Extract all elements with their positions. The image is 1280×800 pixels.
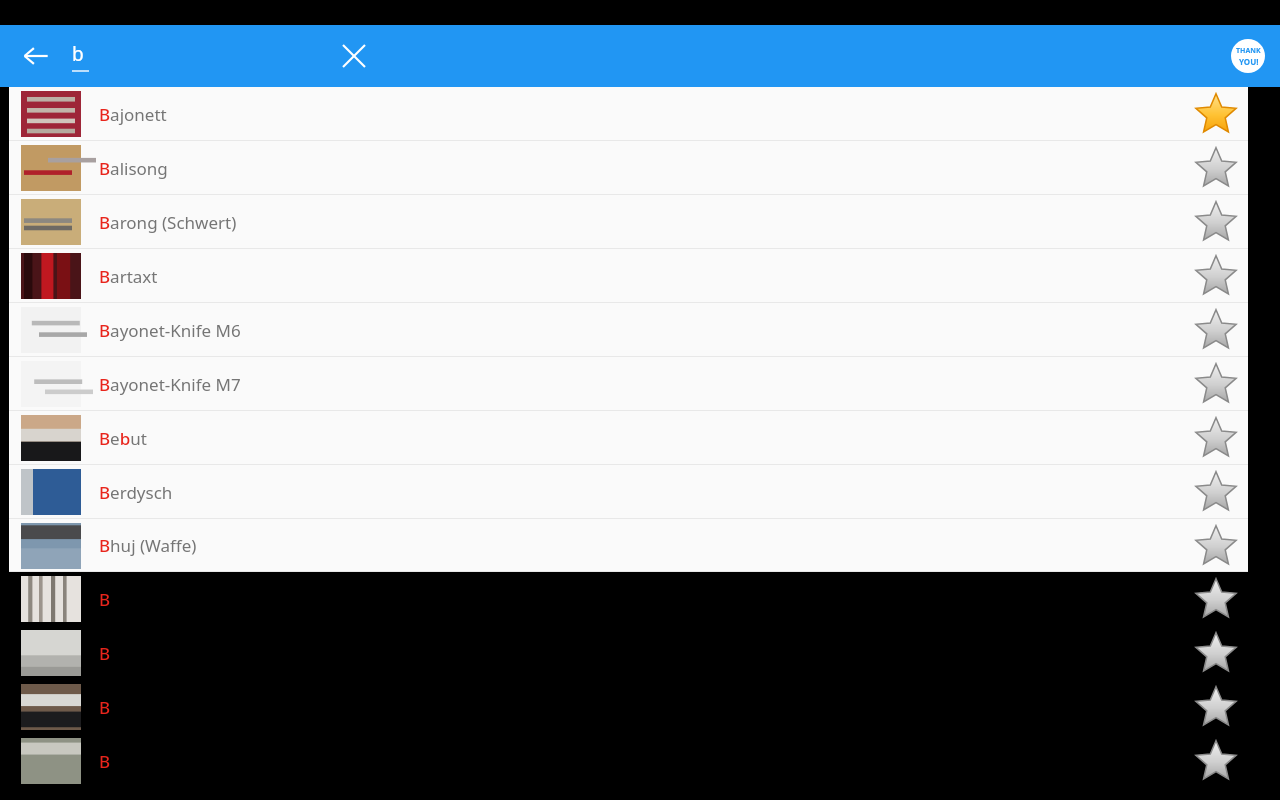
button[interactable]: Bajonett [9, 87, 1248, 141]
staticText: THANK [1236, 46, 1261, 56]
button[interactable]: B [9, 680, 1248, 734]
staticText: Berdysch [99, 481, 173, 504]
staticText: Bajonett [99, 103, 167, 126]
button[interactable]: b [72, 34, 326, 78]
staticText: Bhuj (Waffe) [99, 534, 197, 557]
button[interactable]: B [9, 734, 1248, 788]
staticText: Bayonet-Knife M6 [99, 319, 241, 342]
button[interactable]: Berdysch [9, 465, 1248, 519]
button[interactable]: B [9, 572, 1248, 626]
staticText: B [99, 588, 111, 611]
button[interactable]: Bartaxt [9, 249, 1248, 303]
staticText: B [99, 642, 111, 665]
button[interactable]: Clear search [326, 28, 382, 84]
button[interactable]: Bebut [9, 411, 1248, 465]
staticText: Barong (Schwert) [99, 211, 237, 234]
staticText: b [72, 41, 84, 67]
staticText: YOU! [1239, 56, 1259, 67]
button[interactable]: B [9, 626, 1248, 680]
staticText: B [99, 750, 111, 773]
staticText: Balisong [99, 157, 168, 180]
button[interactable]: Balisong [9, 141, 1248, 195]
staticText: Bebut [99, 427, 147, 450]
staticText: Bayonet-Knife M7 [99, 373, 241, 396]
staticText: B [99, 696, 111, 719]
button[interactable]: Bayonet-Knife M6 [9, 303, 1248, 357]
button[interactable]: Thank you [1231, 39, 1265, 73]
button[interactable]: Back [8, 28, 64, 84]
button[interactable]: Bhuj (Waffe) [9, 519, 1248, 572]
button[interactable]: Bayonet-Knife M7 [9, 357, 1248, 411]
button[interactable]: Barong (Schwert) [9, 195, 1248, 249]
staticText: Bartaxt [99, 265, 158, 288]
